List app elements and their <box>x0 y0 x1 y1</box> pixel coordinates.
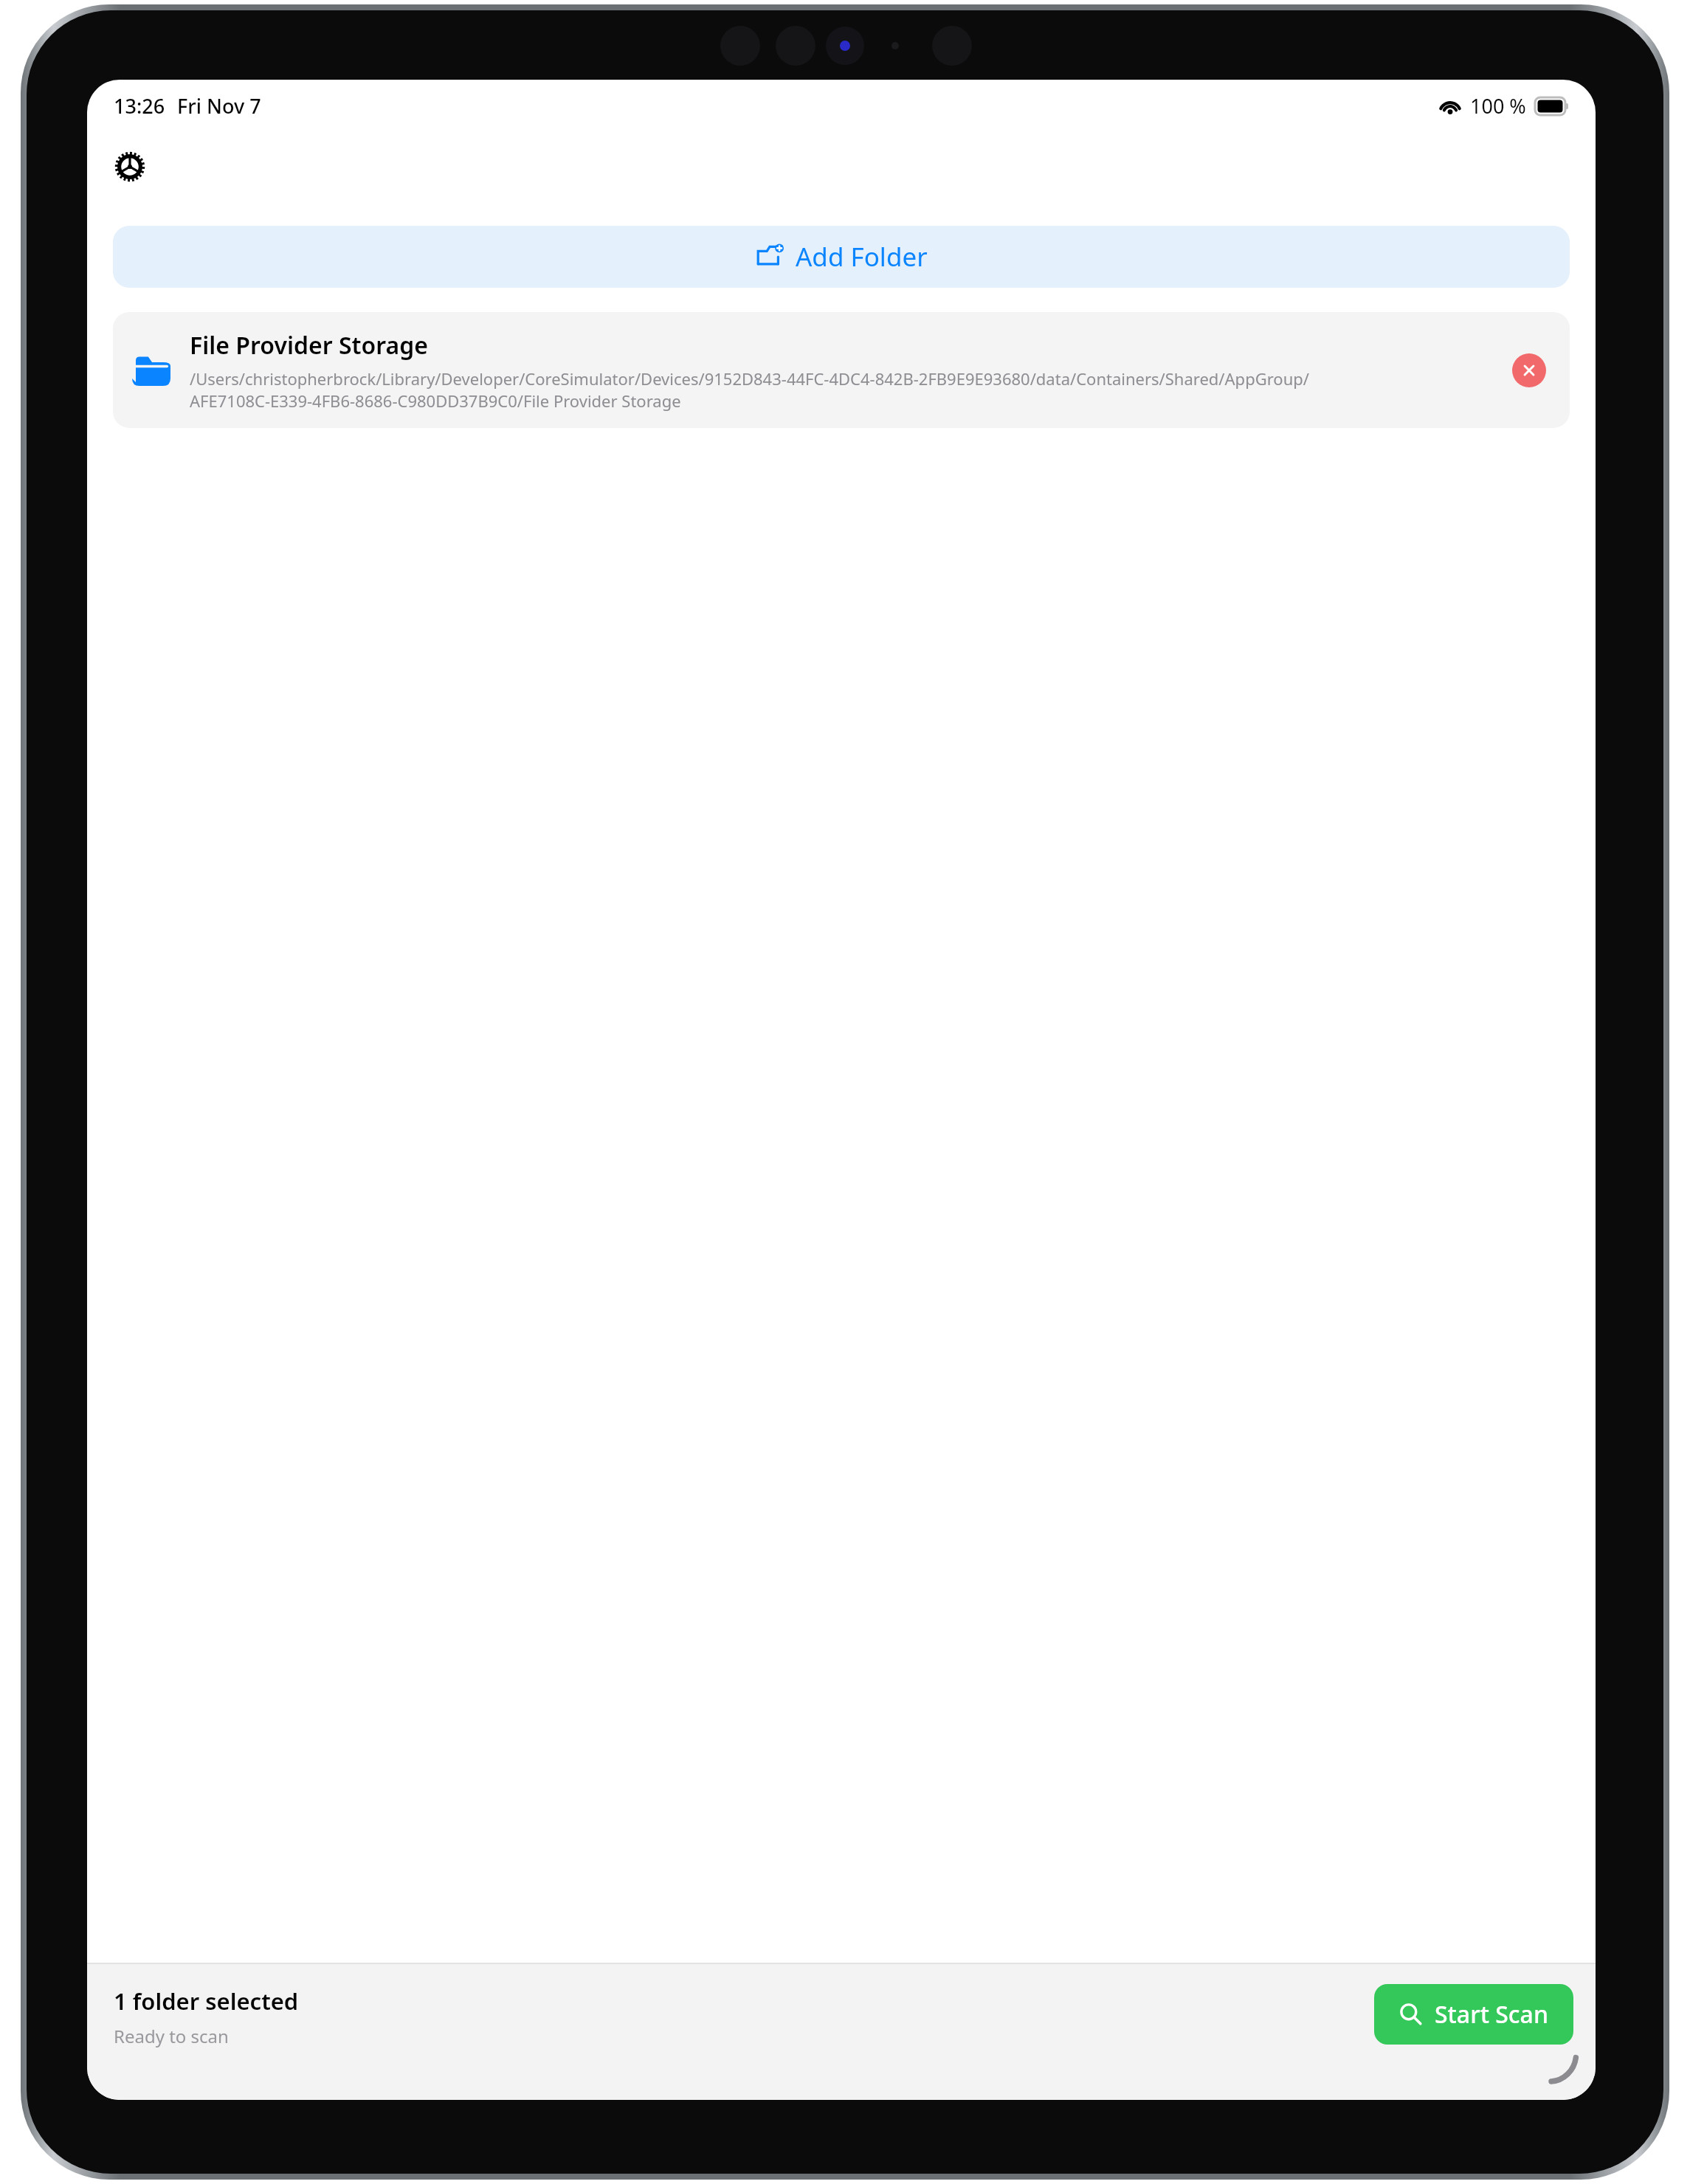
staticText: Ready to scan <box>114 2024 229 2048</box>
button[interactable]: File Provider Storage <box>113 312 1570 428</box>
staticText: 100 % <box>1470 92 1526 120</box>
button[interactable]: Remove folder <box>1512 353 1546 387</box>
button[interactable]: Settings <box>100 137 159 196</box>
staticText: 13:26 <box>114 92 165 120</box>
button[interactable]: Add Folder <box>113 226 1570 288</box>
staticText: File Provider Storage <box>190 329 428 362</box>
button[interactable]: Start Scan <box>1374 1984 1573 2045</box>
staticText: Start Scan <box>1435 1998 1548 2031</box>
staticText: Fri Nov 7 <box>177 92 261 120</box>
staticText: AFE7108C-E339-4FB6-8686-C980DD37B9C0/Fil… <box>190 390 681 412</box>
staticText: Add Folder <box>796 239 928 274</box>
staticText: 1 folder selected <box>114 1986 299 2017</box>
staticText: /Users/christopherbrock/Library/Develope… <box>190 367 1309 390</box>
